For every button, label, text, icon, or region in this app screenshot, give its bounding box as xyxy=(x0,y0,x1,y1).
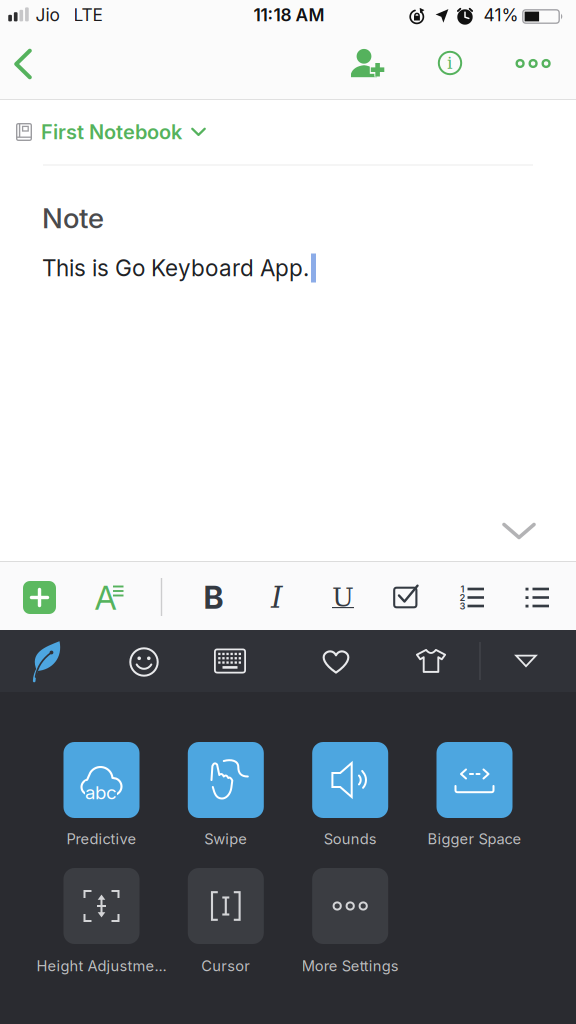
button[interactable]: Emoji xyxy=(129,647,159,677)
staticText: Swipe xyxy=(204,830,247,848)
button[interactable]: Text style xyxy=(96,583,125,611)
staticText: Jio xyxy=(35,5,59,25)
button[interactable]: Dismiss keyboard xyxy=(502,522,536,539)
button[interactable]: Themes xyxy=(415,648,446,673)
staticText: Predictive xyxy=(66,830,136,848)
staticText: B xyxy=(203,579,223,616)
button[interactable]: Sounds xyxy=(312,742,388,818)
button[interactable]: Bold xyxy=(198,580,228,614)
button[interactable]: Back xyxy=(14,48,32,79)
staticText: This is Go Keyboard App. xyxy=(42,255,309,281)
button[interactable]: More options xyxy=(515,58,550,68)
staticText: LTE xyxy=(73,5,102,25)
button[interactable]: Cursor xyxy=(188,868,264,944)
staticText: U xyxy=(332,582,354,613)
staticText: 11:18 AM xyxy=(253,5,324,25)
staticText: Bigger Space xyxy=(427,830,521,848)
button[interactable]: Checklist xyxy=(393,584,419,608)
button[interactable]: Note info xyxy=(437,50,462,75)
button[interactable]: Swipe xyxy=(188,742,264,818)
staticText: abc xyxy=(85,781,117,803)
button[interactable]: Share note xyxy=(350,48,385,78)
button[interactable]: Numbered list xyxy=(459,585,485,609)
staticText: A xyxy=(94,578,116,617)
button[interactable]: First Notebook xyxy=(16,112,286,152)
button[interactable]: Bigger Space xyxy=(436,742,512,818)
staticText: More Settings xyxy=(302,957,399,975)
staticText: 3 xyxy=(459,600,465,611)
staticText: i xyxy=(447,53,453,73)
button[interactable]: More Settings xyxy=(312,868,388,944)
staticText: First Notebook xyxy=(41,120,182,144)
staticText: Note xyxy=(42,201,104,234)
button[interactable]: Keyboard xyxy=(214,648,246,673)
button[interactable]: Bulleted list xyxy=(525,585,551,609)
staticText: Sounds xyxy=(324,830,377,848)
staticText: 41% xyxy=(483,5,518,25)
button[interactable]: Insert xyxy=(23,581,56,614)
staticText: Height Adjustme... xyxy=(36,957,166,975)
button[interactable]: Height Adjustment xyxy=(63,868,139,944)
button[interactable]: Hide panel xyxy=(514,654,537,668)
staticText: I xyxy=(271,580,283,614)
staticText: Cursor xyxy=(201,957,250,975)
button[interactable]: Italic xyxy=(264,580,290,614)
button[interactable]: Favorites xyxy=(321,648,350,675)
button[interactable]: Predictive xyxy=(63,742,139,818)
button[interactable]: GO Keyboard menu xyxy=(28,640,62,682)
staticText: 1 xyxy=(460,583,464,594)
button[interactable]: Underline xyxy=(329,579,357,615)
staticText: 2 xyxy=(459,592,465,603)
